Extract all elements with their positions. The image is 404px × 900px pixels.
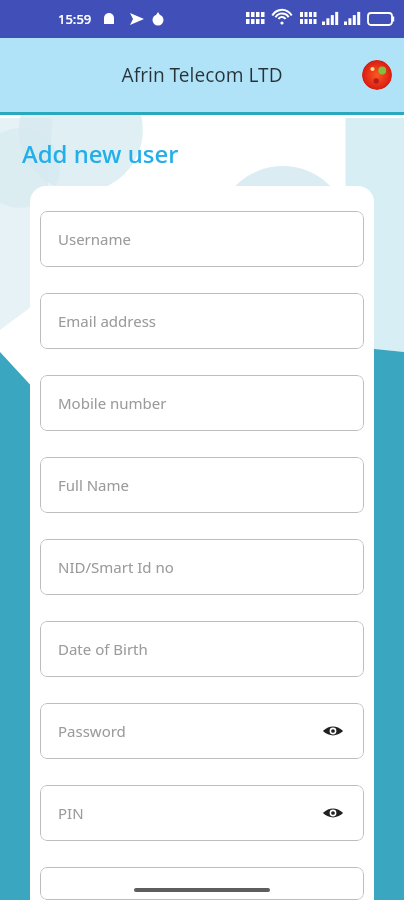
button[interactable]: Username bbox=[40, 211, 364, 267]
staticText: Username bbox=[58, 229, 346, 249]
button[interactable]: Full Name bbox=[40, 457, 364, 513]
button[interactable]: Email address bbox=[40, 293, 364, 349]
staticText bbox=[58, 874, 346, 894]
button[interactable]: Mobile number bbox=[40, 375, 364, 431]
button[interactable]: Profile bbox=[362, 60, 392, 90]
staticText: Full Name bbox=[58, 475, 346, 495]
button[interactable]: Date of Birth bbox=[40, 621, 364, 677]
button[interactable]: Toggle visibility bbox=[320, 800, 346, 826]
staticText: Date of Birth bbox=[58, 639, 346, 659]
button[interactable]: Password bbox=[40, 703, 364, 759]
staticText: Mobile number bbox=[58, 393, 346, 413]
staticText: Add new user bbox=[22, 137, 179, 170]
button[interactable]: Toggle visibility bbox=[320, 718, 346, 744]
button[interactable] bbox=[40, 867, 364, 900]
staticText: PIN bbox=[58, 803, 320, 823]
staticText: Afrin Telecom LTD bbox=[121, 62, 283, 88]
button[interactable]: NID/Smart Id no bbox=[40, 539, 364, 595]
staticText: 15:59 bbox=[58, 10, 92, 28]
button[interactable]: PIN bbox=[40, 785, 364, 841]
staticText: NID/Smart Id no bbox=[58, 557, 346, 577]
staticText: Email address bbox=[58, 311, 346, 331]
staticText: Password bbox=[58, 721, 320, 741]
